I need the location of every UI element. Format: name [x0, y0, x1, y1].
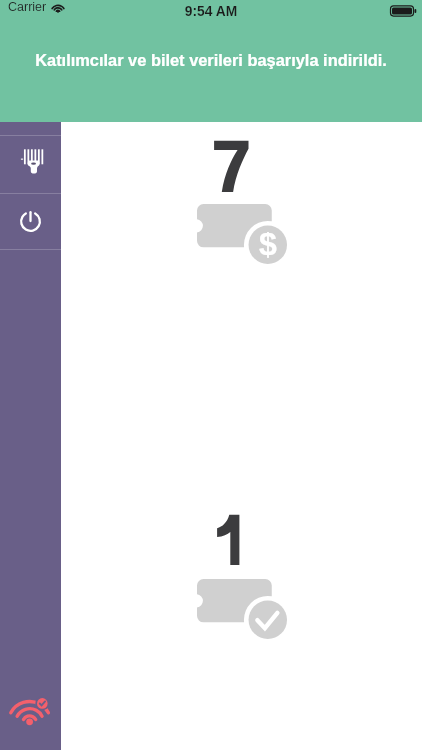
- staticText: Katılımcılar ve bilet verileri başarıyla…: [0, 51, 422, 69]
- staticText: Carrier: [8, 0, 47, 14]
- button[interactable]: [61, 511, 422, 625]
- button[interactable]: $: [61, 138, 422, 252]
- button[interactable]: Connection status: [0, 670, 61, 750]
- staticText: 9:54 AM: [0, 4, 422, 19]
- button[interactable]: Scan barcode: [0, 136, 61, 193]
- button[interactable]: Power: [0, 194, 61, 249]
- staticText: $: [259, 226, 277, 262]
